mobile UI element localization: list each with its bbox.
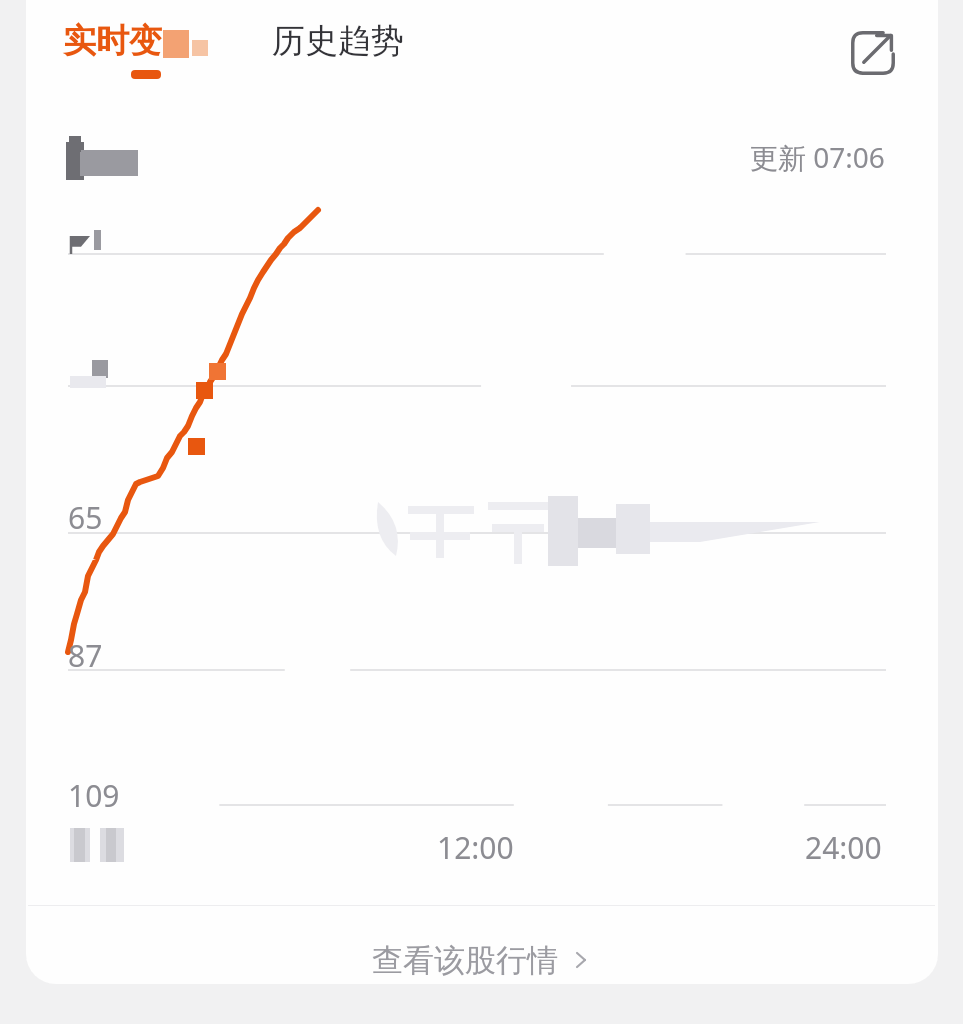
staticText: 实时变 [63, 20, 162, 62]
staticText: 历史趋势 [272, 20, 404, 62]
staticText: 12:00 [437, 827, 514, 868]
staticText: 65 [68, 497, 103, 538]
staticText: 109 [68, 775, 120, 816]
staticText: 24:00 [805, 827, 882, 868]
staticText: 更新 07:06 [750, 138, 885, 176]
button[interactable]: 历史趋势 [272, 20, 404, 62]
staticText: 87 [68, 635, 103, 676]
button[interactable]: 实时变 [63, 20, 208, 79]
button[interactable]: 在新页面打开 [842, 22, 904, 84]
button[interactable]: 查看该股行情 [0, 920, 963, 1000]
staticText: 查看该股行情 [372, 941, 558, 980]
